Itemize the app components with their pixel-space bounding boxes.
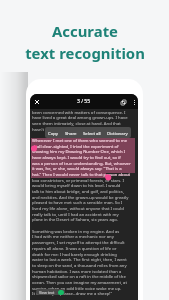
staticText: been concerned with matters of consequen…	[32, 110, 126, 116]
staticText: and neckties. And the grown-up would be …	[32, 195, 129, 201]
staticText: talk to him about bridge, and golf, and …	[32, 189, 124, 195]
staticText: View text	[39, 290, 55, 295]
staticText: seen them intimately, close at hand. And…	[32, 121, 121, 127]
staticText: hat." Then I would never talk to that pe…	[32, 172, 131, 178]
staticText: sunrise, when an odd little voice woke m…	[32, 286, 122, 292]
staticText: Copy	[48, 130, 59, 136]
staticText: ocean. Then you can imagine my amazement…	[32, 280, 127, 286]
button[interactable]: Share	[62, 127, 80, 138]
staticText: shipwrecked sailor on a raft in the midd…	[32, 274, 126, 280]
staticText: passengers, I set myself to attempt the …	[32, 240, 125, 246]
staticText: really talk to, until I had an accident …	[32, 212, 119, 218]
staticText: It said: "If you please--draw me a sheep…	[32, 291, 113, 297]
staticText: text recognition	[25, 43, 145, 63]
button[interactable]: View text	[36, 289, 65, 295]
staticText: repairs all alone. It was a question of …	[32, 246, 117, 252]
staticText: Something was broken in my engine. And a…	[32, 229, 120, 235]
button[interactable]: More options	[129, 97, 138, 107]
staticText: Accurate	[52, 21, 118, 41]
staticText: was a person of true understanding. But,…	[32, 161, 131, 167]
button[interactable]: Select all	[80, 127, 104, 138]
staticText: Select all	[83, 130, 101, 136]
staticText: showing him my Drawing Number One, which…	[32, 149, 126, 155]
staticText: Dictionary	[107, 130, 128, 136]
staticText: at all clear-sighted, I tried the experi…	[32, 144, 119, 150]
staticText: plane in the Desert of Sahara, six years…	[32, 217, 118, 223]
staticText: would bring myself down to his level. I …	[32, 183, 121, 189]
button[interactable]: Copy	[118, 97, 128, 107]
staticText: have always kept. I would try to find ou…	[32, 155, 121, 161]
staticText: have lived a great deal among grown-ups.…	[32, 115, 128, 121]
staticText: it was, he, or she, would always say: "T…	[32, 166, 122, 172]
button[interactable]: Dictionary	[104, 127, 131, 138]
staticText: water to last a week. The first night, t…	[32, 257, 127, 263]
staticText: Share	[65, 130, 77, 136]
staticText: to sleep on the sand, a thousand miles f…	[32, 263, 127, 269]
staticText: pleased to have met such a sensible man.…	[32, 200, 123, 206]
staticText: Whenever I met one of them who seemed to…	[32, 138, 128, 144]
staticText: human habitation. I was more isolated th…	[32, 269, 122, 275]
button[interactable]: Copy	[45, 127, 62, 138]
staticText: death for me: I had barely enough drinki…	[32, 252, 117, 258]
staticText: boa constrictors, or primeval forests, o…	[32, 178, 124, 184]
button[interactable]: Close	[32, 97, 42, 107]
staticText: hasn't much improved my opinion of them.	[32, 127, 117, 133]
staticText: 3 / 55	[77, 98, 91, 105]
staticText: I had with me neither a mechanic nor any	[32, 234, 114, 240]
staticText: lived my life alone, without anyone that…	[32, 206, 124, 212]
